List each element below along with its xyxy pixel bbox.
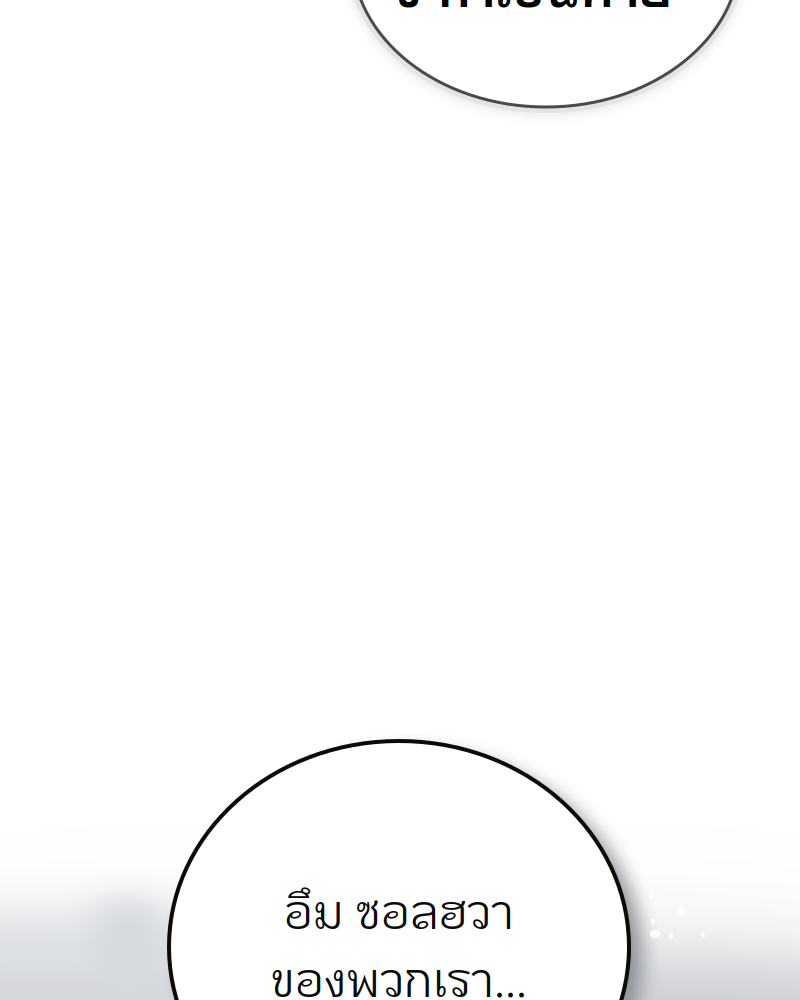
- staticText: อึม ซอลฮวา: [284, 879, 514, 941]
- staticText: ข ทำเป็นหาย: [395, 0, 672, 20]
- staticText: ของพวกเรา...: [271, 947, 527, 1000]
